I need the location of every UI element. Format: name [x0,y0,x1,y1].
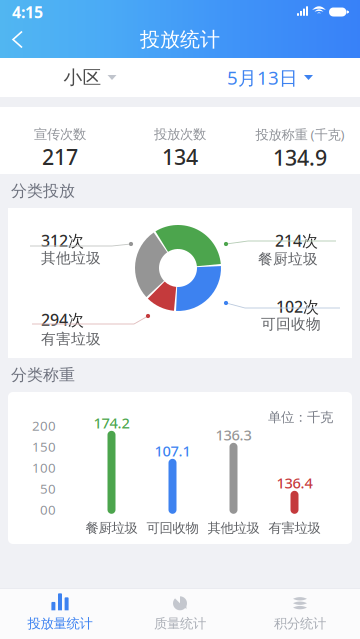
staticText: 134 [162,142,198,171]
button[interactable]: 积分统计 [240,589,360,639]
staticText: 5月13日 [227,65,298,90]
staticText: 质量统计 [154,615,206,632]
staticText: 有害垃圾 [268,520,320,536]
staticText: 餐厨垃圾 [85,520,137,536]
staticText: 投放统计 [140,27,220,52]
staticText: 其他垃圾 [207,520,259,536]
button[interactable]: Back [0,22,35,56]
staticText: 餐厨垃圾 [258,250,318,268]
staticText: 有害垃圾 [41,330,101,348]
staticText: 分类投放 [11,181,75,201]
staticText: 134.9 [273,143,327,171]
button[interactable]: 质量统计 [120,589,240,639]
staticText: 宣传次数 [34,126,86,142]
staticText: 217 [42,142,78,171]
staticText: 150 [32,438,56,455]
staticText: 174.2 [93,413,129,433]
button[interactable]: 小区 [0,58,180,97]
button[interactable]: 5月13日 [180,58,360,97]
staticText: 可回收物 [146,520,198,536]
staticText: 312次 [41,230,84,251]
staticText: 投放称重 (千克) [255,125,344,143]
staticText: 投放量统计 [27,615,92,632]
staticText: 294次 [41,309,84,330]
staticText: 4:15 [12,1,43,23]
staticText: 投放次数 [154,126,206,142]
staticText: 其他垃圾 [41,249,101,267]
staticText: 分类称重 [11,365,75,385]
button[interactable]: 投放量统计 [0,589,120,639]
staticText: 50 [40,480,56,497]
staticText: 214次 [275,230,318,251]
staticText: 136.4 [276,473,312,493]
staticText: 136.3 [215,425,251,445]
staticText: 单位：千克 [268,409,333,425]
staticText: 102次 [276,296,319,317]
staticText: 200 [32,417,56,434]
staticText: 小区 [63,66,101,89]
staticText: 00 [40,501,56,518]
staticText: 可回收物 [261,315,321,333]
staticText: 100 [32,459,56,476]
staticText: 107.1 [154,441,190,461]
staticText: 积分统计 [274,615,326,632]
